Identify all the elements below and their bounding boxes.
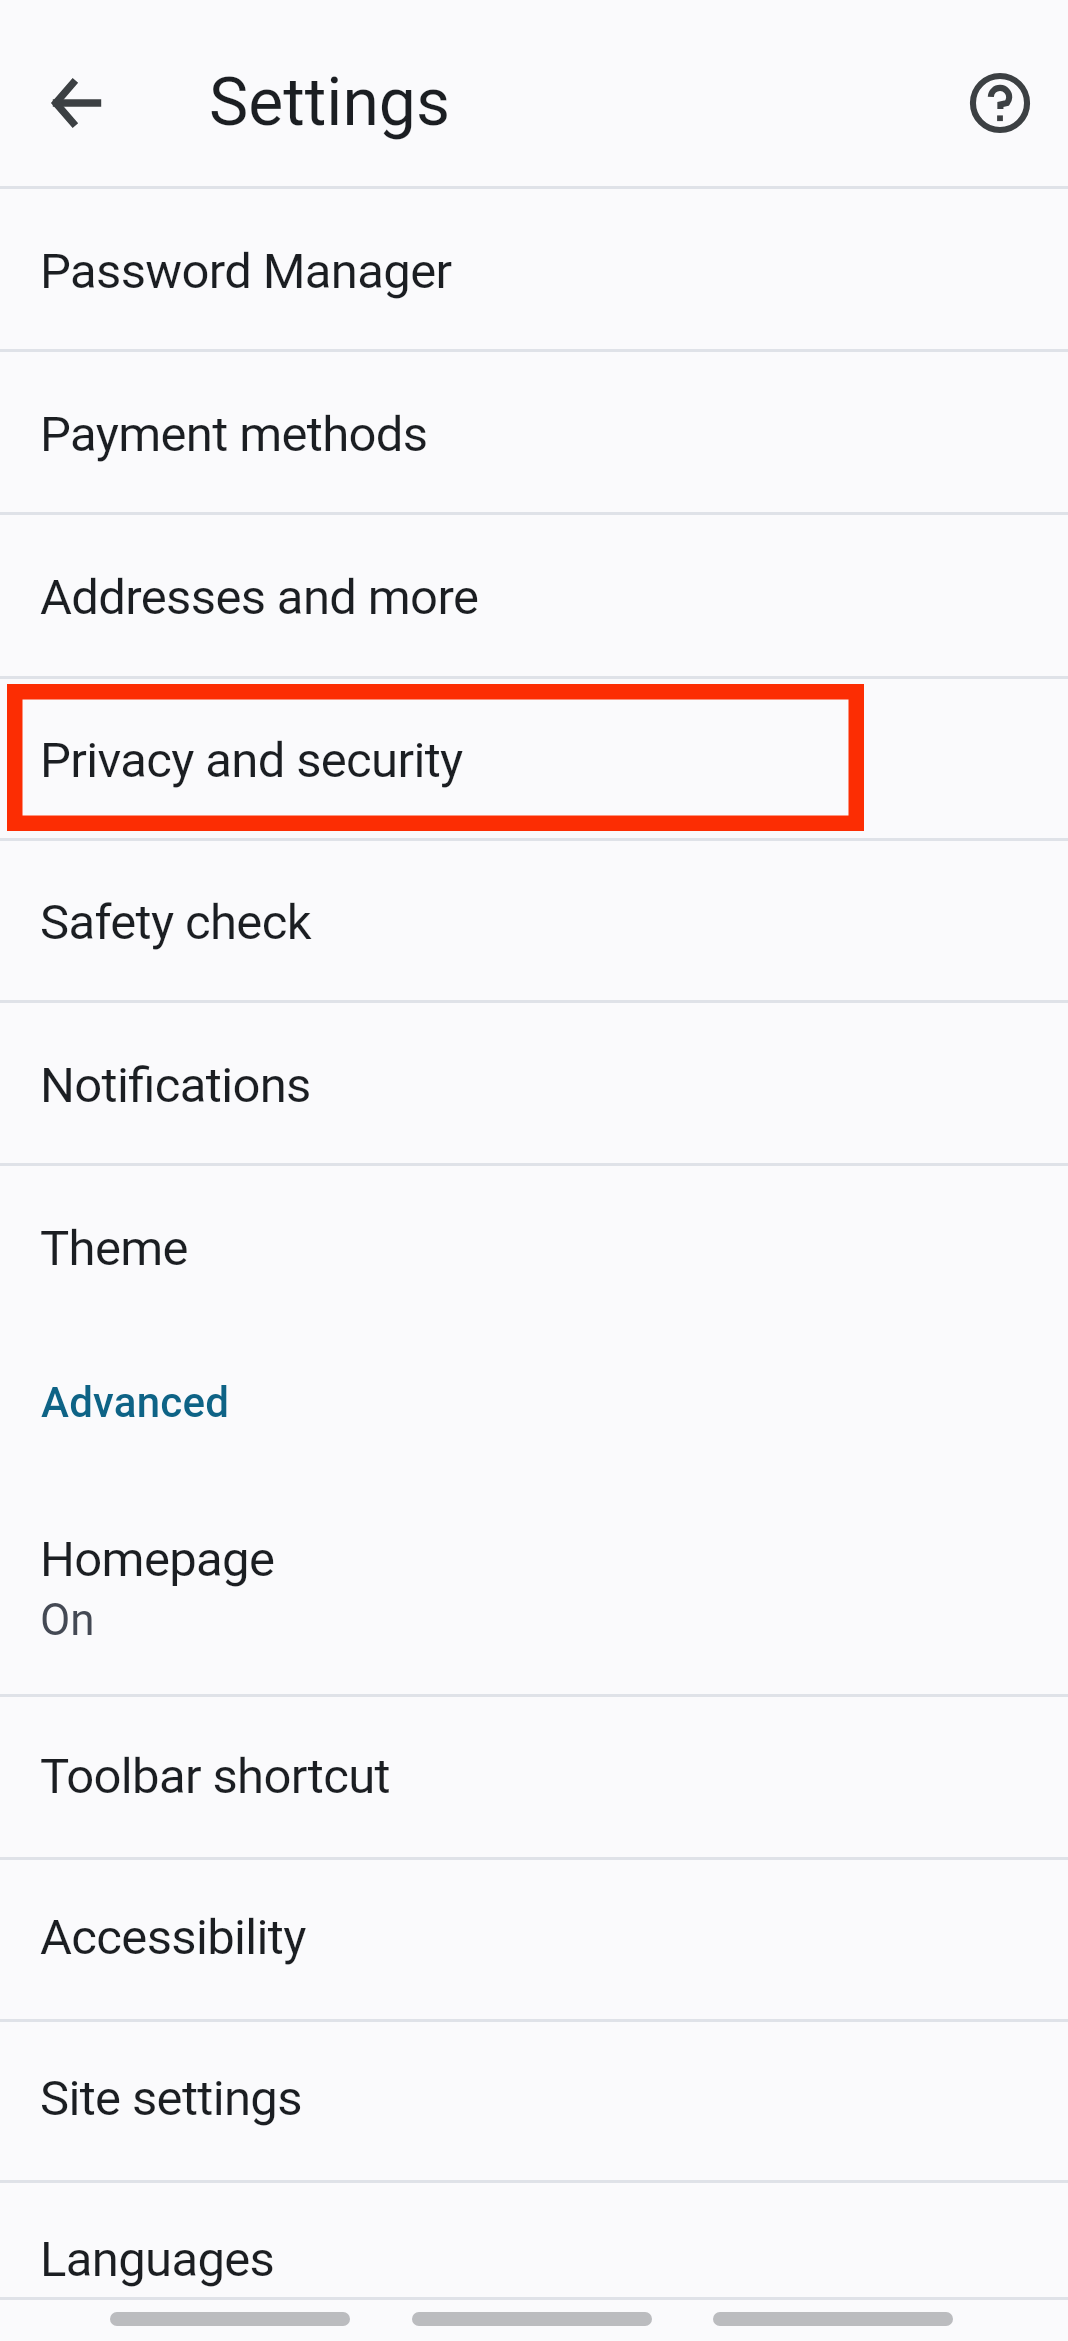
staticText: Accessibility <box>40 1907 306 1966</box>
staticText: On <box>40 1593 95 1646</box>
button[interactable]: Payment methods <box>0 352 1068 512</box>
staticText: Privacy and security <box>40 730 463 789</box>
staticText: Password Manager <box>40 241 452 300</box>
staticText: Addresses and more <box>40 567 479 626</box>
button[interactable]: Toolbar shortcut <box>0 1697 1068 1857</box>
staticText: Notifications <box>40 1055 311 1114</box>
button[interactable]: Languages <box>0 2183 1068 2341</box>
button[interactable]: Notifications <box>0 1003 1068 1163</box>
button[interactable]: Theme <box>0 1166 1068 1325</box>
button[interactable]: Help <box>952 55 1048 151</box>
staticText: Theme <box>40 1218 188 1277</box>
staticText: Settings <box>209 62 450 141</box>
button[interactable]: Homepage <box>0 1475 1068 1694</box>
staticText: Languages <box>40 2229 275 2288</box>
button[interactable]: Privacy and security <box>0 679 1068 838</box>
button[interactable]: Back <box>29 55 125 151</box>
button[interactable]: Accessibility <box>0 1860 1068 2019</box>
button[interactable]: Advanced <box>0 1325 1068 1475</box>
button[interactable]: Safety check <box>0 841 1068 1000</box>
staticText: Advanced <box>41 1377 230 1427</box>
button[interactable]: Password Manager <box>0 189 1068 349</box>
staticText: Site settings <box>40 2068 302 2127</box>
staticText: Safety check <box>40 892 311 951</box>
button[interactable]: Site settings <box>0 2022 1068 2180</box>
button[interactable]: Addresses and more <box>0 515 1068 676</box>
staticText: Toolbar shortcut <box>40 1746 390 1805</box>
staticText: Homepage <box>40 1529 275 1588</box>
staticText: Payment methods <box>40 404 428 463</box>
